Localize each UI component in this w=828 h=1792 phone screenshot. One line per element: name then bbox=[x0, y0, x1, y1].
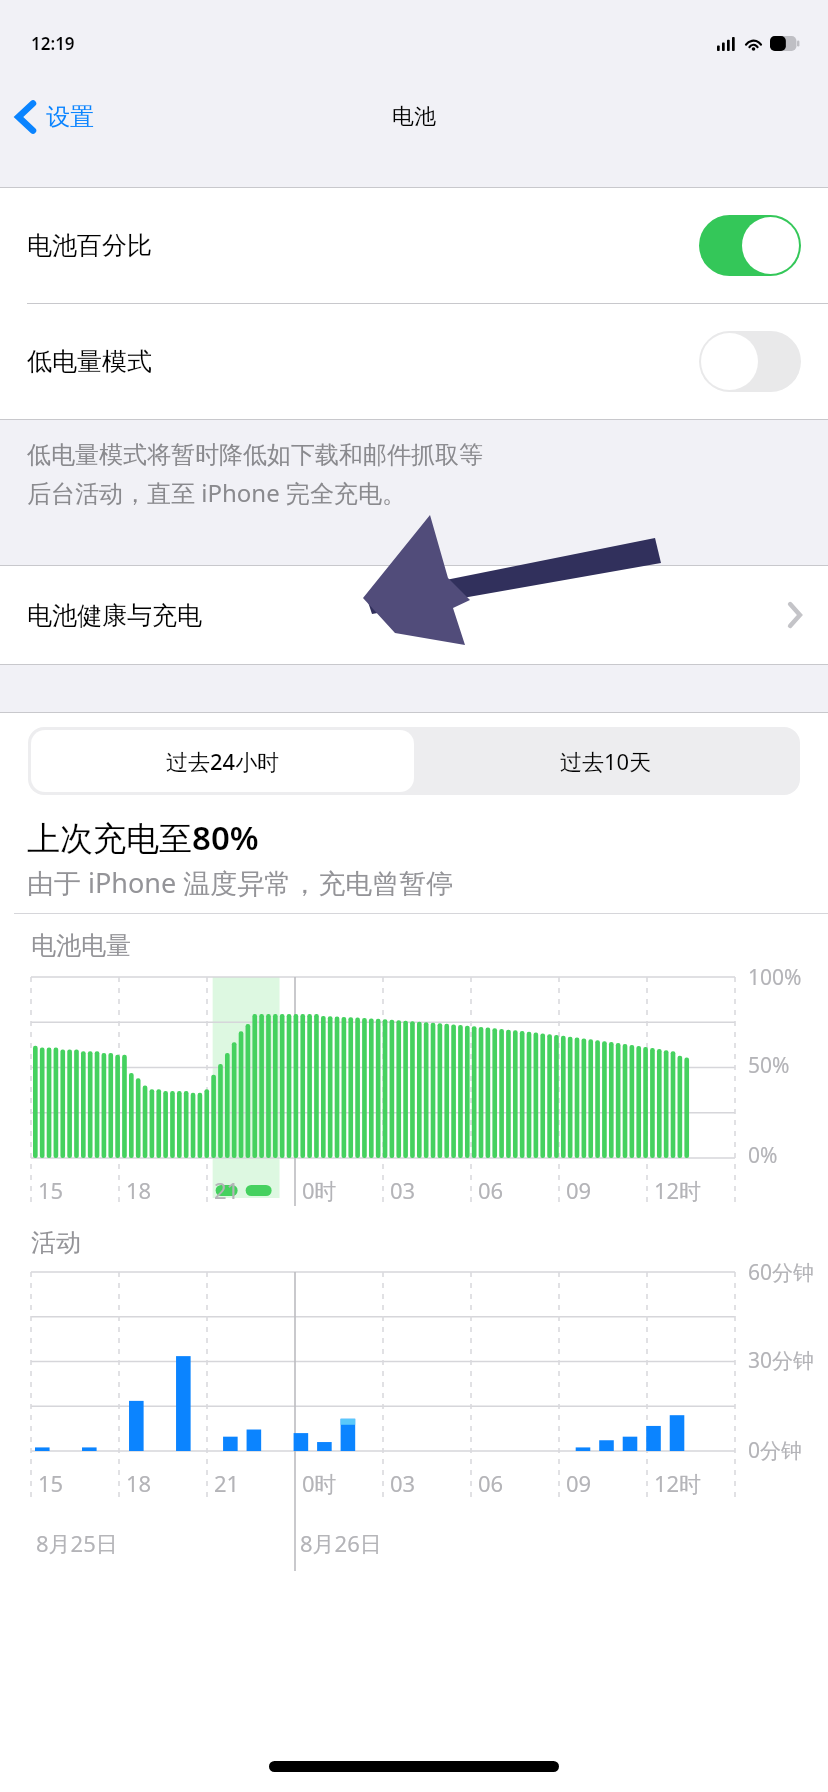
staticText: 活动 bbox=[31, 1227, 81, 1258]
staticText: 09 bbox=[566, 1468, 592, 1498]
staticText: 过去10天 bbox=[560, 746, 652, 776]
staticText: 0时 bbox=[302, 1468, 337, 1498]
staticText: 15 bbox=[38, 1175, 64, 1205]
staticText: 设置 bbox=[46, 102, 94, 132]
other: 电池百分比 bbox=[699, 215, 801, 276]
staticText: 30分钟 bbox=[748, 1346, 815, 1375]
staticText: 电池健康与充电 bbox=[27, 600, 788, 631]
staticText: 06 bbox=[478, 1468, 504, 1498]
staticText: 0% bbox=[748, 1141, 778, 1170]
staticText: 06 bbox=[478, 1175, 504, 1205]
staticText: 过去24小时 bbox=[166, 746, 280, 776]
staticText: 上次充电至80% bbox=[27, 815, 259, 860]
staticText: 低电量模式 bbox=[27, 346, 699, 377]
staticText: 12时 bbox=[654, 1175, 702, 1205]
button[interactable]: 电池健康与充电 bbox=[0, 566, 828, 664]
staticText: 低电量模式将暂时降低如下载和邮件抓取等 bbox=[27, 440, 483, 470]
staticText: 21 bbox=[214, 1175, 240, 1205]
staticText: 60分钟 bbox=[748, 1258, 815, 1287]
staticText: 0时 bbox=[302, 1175, 337, 1205]
staticText: 由于 iPhone 温度异常，充电曾暂停 bbox=[27, 864, 454, 901]
staticText: 0分钟 bbox=[748, 1436, 803, 1465]
staticText: 50% bbox=[748, 1051, 790, 1080]
button[interactable]: 过去10天 bbox=[414, 730, 797, 792]
staticText: 03 bbox=[390, 1175, 416, 1205]
staticText: 电池 bbox=[392, 103, 436, 131]
staticText: 8月25日 bbox=[36, 1528, 118, 1558]
button[interactable]: 过去24小时 bbox=[31, 730, 414, 792]
button[interactable]: 电池百分比 bbox=[0, 188, 828, 303]
other: 低电量模式 bbox=[699, 331, 801, 392]
staticText: 18 bbox=[126, 1468, 152, 1498]
staticText: 03 bbox=[390, 1468, 416, 1498]
staticText: 21 bbox=[214, 1468, 240, 1498]
button[interactable]: 设置 bbox=[0, 78, 106, 156]
staticText: 09 bbox=[566, 1175, 592, 1205]
staticText: 电池百分比 bbox=[27, 230, 699, 261]
staticText: 18 bbox=[126, 1175, 152, 1205]
staticText: 15 bbox=[38, 1468, 64, 1498]
staticText: 8月26日 bbox=[300, 1528, 382, 1558]
staticText: 后台活动，直至 iPhone 完全充电。 bbox=[27, 476, 406, 509]
staticText: 100% bbox=[748, 963, 802, 992]
staticText: 12:19 bbox=[31, 32, 75, 55]
button[interactable]: 低电量模式 bbox=[0, 304, 828, 419]
staticText: 12时 bbox=[654, 1468, 702, 1498]
staticText: 电池电量 bbox=[31, 930, 131, 961]
